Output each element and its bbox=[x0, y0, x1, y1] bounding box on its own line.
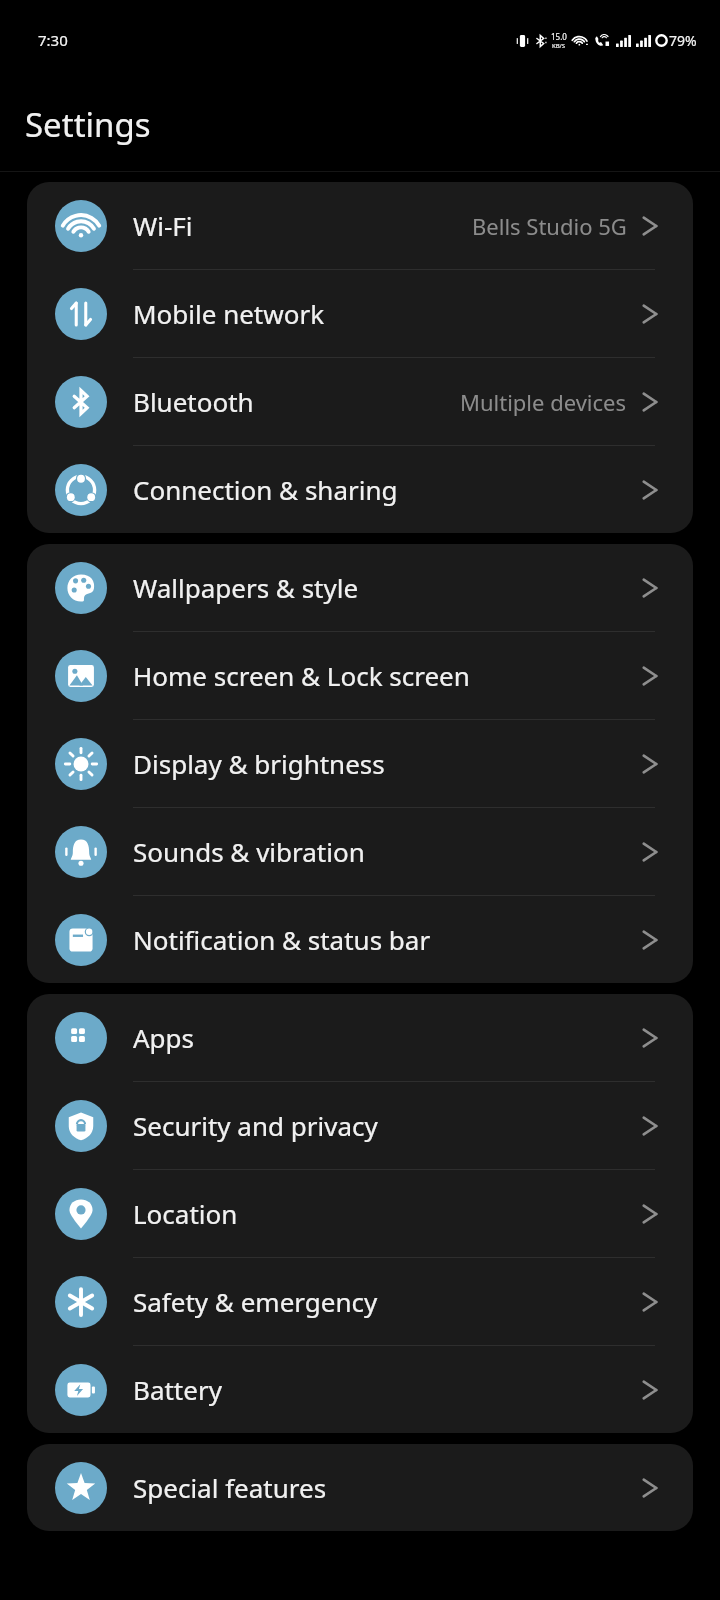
staticText: Bluetooth bbox=[133, 384, 460, 419]
button[interactable]: Special features bbox=[27, 1444, 693, 1531]
button[interactable]: Location bbox=[27, 1170, 693, 1257]
staticText: 79% bbox=[669, 31, 697, 50]
button[interactable]: Display & brightness bbox=[27, 720, 693, 807]
button[interactable]: Home screen & Lock screen bbox=[27, 632, 693, 719]
staticText: Battery bbox=[133, 1372, 641, 1407]
staticText: Wi-Fi bbox=[133, 208, 472, 243]
staticText: KB/S bbox=[552, 42, 566, 50]
staticText: Mobile network bbox=[133, 296, 641, 331]
staticText: Home screen & Lock screen bbox=[133, 658, 641, 693]
button[interactable]: Mobile network bbox=[27, 270, 693, 357]
staticText: Notification & status bar bbox=[133, 922, 641, 957]
staticText: Special features bbox=[133, 1470, 641, 1505]
button[interactable]: Bluetooth bbox=[27, 358, 693, 445]
staticText: 7:30 bbox=[38, 30, 68, 50]
staticText: Wallpapers & style bbox=[133, 570, 641, 605]
staticText: Sounds & vibration bbox=[133, 834, 641, 869]
staticText: Apps bbox=[133, 1020, 641, 1055]
staticText: Settings bbox=[25, 102, 151, 147]
staticText: Bells Studio 5G bbox=[472, 211, 627, 241]
button[interactable]: Connection & sharing bbox=[27, 446, 693, 533]
staticText: 15.0 bbox=[551, 31, 567, 42]
button[interactable]: Wallpapers & style bbox=[27, 544, 693, 631]
staticText: Multiple devices bbox=[460, 387, 627, 417]
button[interactable]: Safety & emergency bbox=[27, 1258, 693, 1345]
button[interactable]: Security and privacy bbox=[27, 1082, 693, 1169]
button[interactable]: Notification & status bar bbox=[27, 896, 693, 983]
button[interactable]: Apps bbox=[27, 994, 693, 1081]
button[interactable]: Sounds & vibration bbox=[27, 808, 693, 895]
button[interactable]: Wi-Fi bbox=[27, 182, 693, 269]
staticText: Location bbox=[133, 1196, 641, 1231]
staticText: Display & brightness bbox=[133, 746, 641, 781]
staticText: Security and privacy bbox=[133, 1108, 641, 1143]
staticText: Connection & sharing bbox=[133, 472, 641, 507]
staticText: Safety & emergency bbox=[133, 1284, 641, 1319]
button[interactable]: Battery bbox=[27, 1346, 693, 1433]
